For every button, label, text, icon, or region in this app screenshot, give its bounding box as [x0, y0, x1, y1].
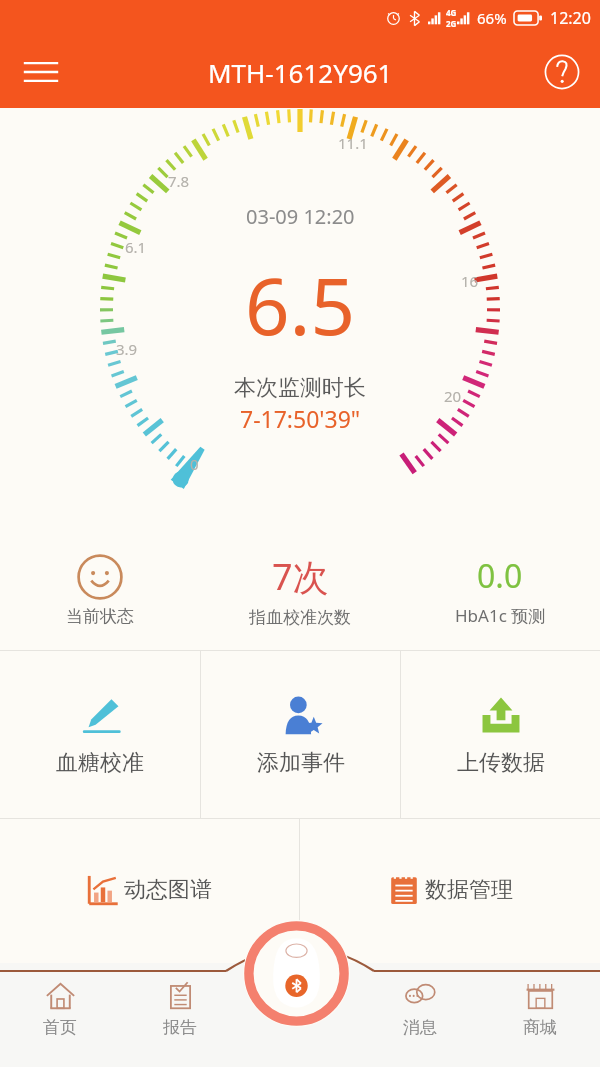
staticText: 本次监测时长: [234, 374, 366, 402]
staticText: HbA1c 预测: [455, 604, 546, 627]
button[interactable]: 消息: [360, 967, 480, 1038]
staticText: 商城: [523, 1017, 557, 1038]
button[interactable]: 动态图谱: [0, 819, 299, 960]
staticText: 03-09 12:20: [246, 203, 355, 230]
staticText: 报告: [163, 1017, 197, 1038]
staticText: 添加事件: [257, 749, 345, 777]
button[interactable]: 商城: [480, 967, 600, 1038]
staticText: 6.1: [125, 237, 147, 257]
staticText: 首页: [43, 1017, 77, 1038]
button[interactable]: 0.0: [400, 554, 600, 627]
button[interactable]: 添加事件: [201, 651, 400, 818]
staticText: 指血校准次数: [249, 607, 351, 628]
button[interactable]: Menu: [14, 45, 68, 99]
button[interactable]: 7次: [200, 552, 400, 628]
staticText: 20: [444, 386, 462, 406]
button[interactable]: 数据管理: [300, 819, 600, 960]
staticText: 血糖校准: [56, 749, 144, 777]
staticText: 16: [461, 271, 479, 291]
staticText: MTH-1612Y961: [208, 55, 393, 90]
staticText: 4G: [446, 7, 457, 18]
button[interactable]: 报告: [120, 967, 240, 1038]
staticText: 消息: [403, 1017, 437, 1038]
button[interactable]: 首页: [0, 967, 120, 1038]
staticText: 3.9: [116, 339, 138, 359]
button[interactable]: Connect device: [243, 920, 357, 1027]
button[interactable]: 上传数据: [401, 651, 600, 818]
staticText: 11.1: [338, 133, 368, 153]
staticText: 66%: [477, 8, 507, 28]
staticText: 7-17:50'39": [240, 403, 361, 434]
staticText: 数据管理: [425, 876, 513, 904]
staticText: 动态图谱: [124, 876, 212, 904]
staticText: 6.5: [245, 252, 356, 358]
button[interactable]: 血糖校准: [0, 651, 200, 818]
staticText: 0: [190, 454, 199, 474]
button[interactable]: Help: [536, 46, 588, 98]
staticText: 12:20: [550, 7, 591, 29]
staticText: 7次: [272, 552, 329, 601]
staticText: 7.8: [168, 171, 190, 191]
staticText: 上传数据: [457, 749, 545, 777]
staticText: 0.0: [477, 554, 523, 598]
staticText: 2G: [446, 18, 457, 29]
button[interactable]: 当前状态: [0, 554, 200, 627]
staticText: 当前状态: [66, 606, 134, 627]
